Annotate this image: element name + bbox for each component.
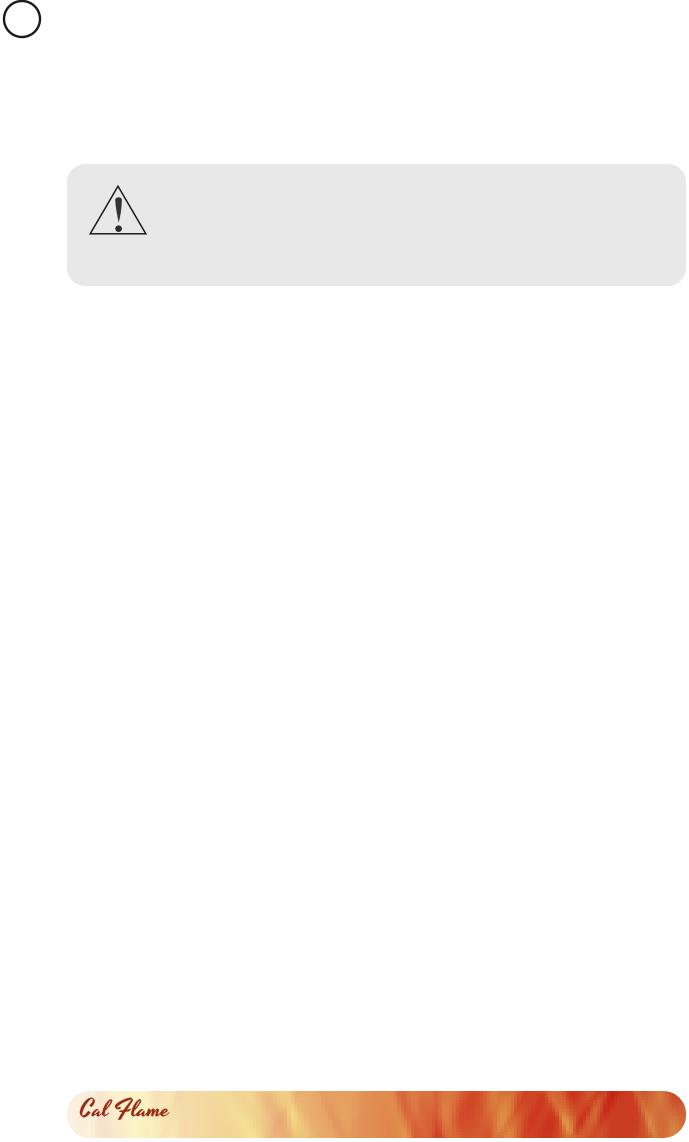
staticText: Cal Flame bbox=[80, 1092, 170, 1127]
button[interactable]: Page number bbox=[4, 1, 40, 37]
button[interactable]: Cal Flame bbox=[67, 1091, 686, 1138]
